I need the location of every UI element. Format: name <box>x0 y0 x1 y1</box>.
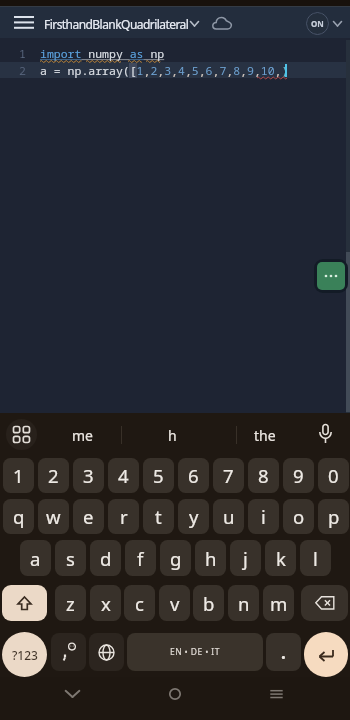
button[interactable]: y <box>178 499 209 534</box>
button[interactable]: EN • DE • IT <box>127 633 263 671</box>
staticText: EN • DE • IT <box>170 646 220 658</box>
button[interactable]: z <box>55 585 86 621</box>
button[interactable]: s <box>55 540 86 576</box>
button[interactable]: u <box>213 499 244 534</box>
button[interactable] <box>212 16 232 30</box>
button[interactable]: e <box>73 499 104 534</box>
button[interactable]: f <box>125 540 156 576</box>
button[interactable]: ON <box>306 12 329 35</box>
staticText: 0 <box>328 463 339 488</box>
staticText: n <box>238 591 250 616</box>
staticText: v <box>170 591 180 616</box>
staticText: ?123 <box>12 647 38 663</box>
staticText: FirsthandBlankQuadrilateral <box>44 16 189 32</box>
button[interactable]: . <box>266 633 301 671</box>
staticText: h <box>205 546 217 571</box>
staticText: j <box>243 546 248 571</box>
button[interactable]: 0 <box>318 458 349 493</box>
staticText: import numpy as np <box>40 46 165 62</box>
button[interactable]: h <box>137 413 207 457</box>
button[interactable]: r <box>108 499 139 534</box>
button[interactable]: g <box>160 540 191 576</box>
button[interactable]: h <box>195 540 226 576</box>
button[interactable]: d <box>90 540 121 576</box>
staticText: 9 <box>293 463 304 488</box>
staticText: t <box>155 504 162 529</box>
button[interactable]: 5 <box>143 458 174 493</box>
button[interactable]: k <box>265 540 296 576</box>
staticText: 3 <box>83 463 94 488</box>
button[interactable]: 8 <box>248 458 279 493</box>
button[interactable]: 3 <box>73 458 104 493</box>
button[interactable] <box>51 633 86 671</box>
button[interactable]: 7 <box>213 458 244 493</box>
button[interactable] <box>317 262 345 290</box>
button[interactable] <box>304 632 348 677</box>
button[interactable]: p <box>318 499 349 534</box>
staticText: a = np.array([1,2,3,4,5,6,7,8,9,10,) <box>40 63 289 79</box>
staticText: e <box>83 504 94 529</box>
staticText: y <box>189 504 199 529</box>
button[interactable]: me <box>47 413 117 457</box>
button[interactable] <box>301 585 348 621</box>
staticText: b <box>203 591 215 616</box>
staticText: 1 <box>13 463 24 488</box>
staticText: p <box>328 504 340 529</box>
button[interactable] <box>89 633 124 671</box>
staticText: 6 <box>188 463 199 488</box>
button[interactable]: 4 <box>108 458 139 493</box>
button[interactable] <box>169 688 181 700</box>
button[interactable]: i <box>248 499 279 534</box>
button[interactable]: the <box>230 413 300 457</box>
staticText: i <box>261 504 266 529</box>
staticText: 2 <box>48 463 59 488</box>
button[interactable]: l <box>300 540 331 576</box>
staticText: g <box>170 546 182 571</box>
button[interactable]: 2 <box>38 458 69 493</box>
staticText: k <box>276 546 286 571</box>
staticText: q <box>13 504 25 529</box>
button[interactable]: v <box>159 585 190 621</box>
staticText: c <box>135 591 144 616</box>
staticText: x <box>101 591 111 616</box>
staticText: z <box>66 591 75 616</box>
staticText: h <box>168 426 177 445</box>
button[interactable]: b <box>193 585 224 621</box>
staticText: the <box>254 426 276 445</box>
button[interactable]: 1 <box>3 458 34 493</box>
staticText: u <box>223 504 235 529</box>
button[interactable]: j <box>230 540 261 576</box>
staticText: a <box>30 546 41 571</box>
button[interactable]: m <box>263 585 294 621</box>
button[interactable]: x <box>90 585 121 621</box>
button[interactable] <box>65 690 80 698</box>
staticText: s <box>66 546 75 571</box>
button[interactable]: t <box>143 499 174 534</box>
button[interactable]: a <box>20 540 51 576</box>
button[interactable]: w <box>38 499 69 534</box>
staticText: l <box>313 546 318 571</box>
staticText: r <box>120 504 128 529</box>
button[interactable]: 9 <box>283 458 314 493</box>
button[interactable]: o <box>283 499 314 534</box>
staticText: d <box>100 546 112 571</box>
staticText: f <box>137 546 144 571</box>
button[interactable] <box>14 16 34 28</box>
button[interactable]: q <box>3 499 34 534</box>
staticText: w <box>46 504 61 529</box>
staticText: . <box>281 641 286 664</box>
button[interactable] <box>270 690 283 698</box>
button[interactable] <box>318 424 333 445</box>
button[interactable]: c <box>124 585 155 621</box>
staticText: 5 <box>153 463 164 488</box>
staticText: o <box>293 504 305 529</box>
button[interactable] <box>6 419 37 450</box>
staticText: 7 <box>223 463 234 488</box>
button[interactable]: ?123 <box>2 632 47 677</box>
staticText: 1 <box>19 46 26 62</box>
button[interactable]: 6 <box>178 458 209 493</box>
button[interactable]: n <box>228 585 259 621</box>
staticText: ON <box>311 18 324 29</box>
button[interactable] <box>2 585 47 621</box>
staticText: 4 <box>118 463 129 488</box>
